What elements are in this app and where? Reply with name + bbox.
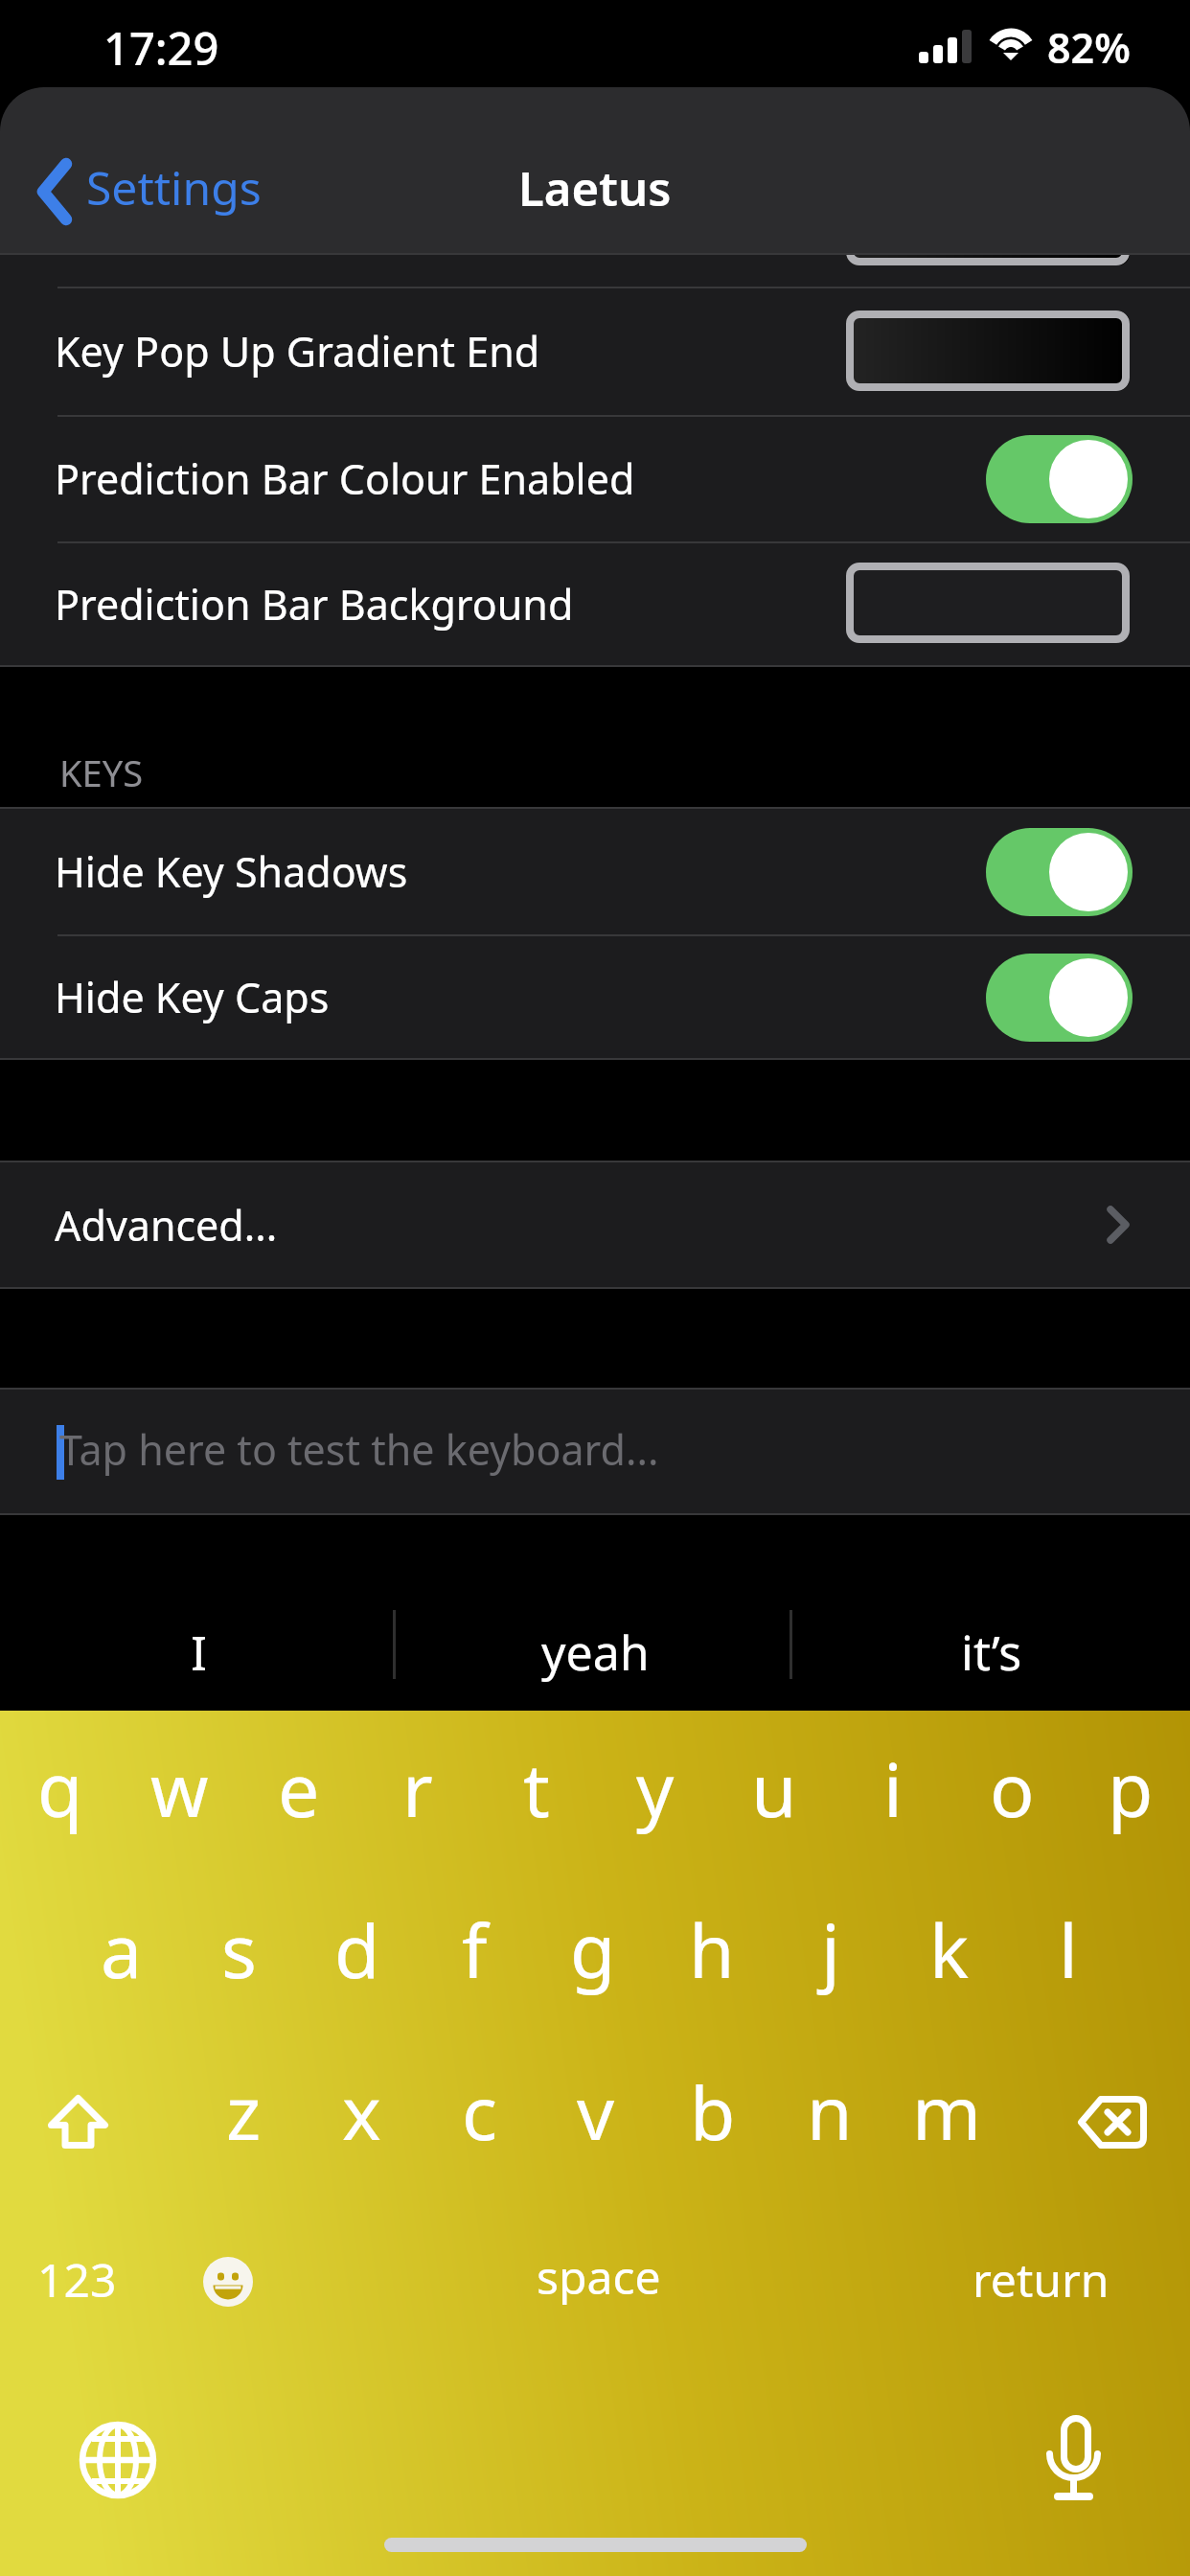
staticText: it’s	[961, 1620, 1022, 1685]
staticText: f	[462, 1899, 488, 2000]
staticText: o	[990, 1738, 1035, 1839]
staticText: a	[101, 1899, 143, 2000]
button[interactable]: g	[534, 1892, 652, 2007]
staticText: space	[537, 2245, 661, 2308]
button[interactable]: r	[358, 1731, 477, 1846]
staticText: k	[929, 1899, 970, 2000]
button[interactable]: b	[654, 2054, 771, 2169]
button[interactable]: x	[303, 2054, 421, 2169]
button[interactable]: 123	[0, 2219, 153, 2334]
button[interactable]: Colour swatch	[846, 563, 1130, 643]
button[interactable]: Advanced...	[0, 1162, 1190, 1287]
staticText: KEYS	[59, 747, 144, 797]
staticText: return	[973, 2248, 1110, 2311]
button[interactable]: k	[890, 1892, 1009, 2007]
button[interactable]: p	[1071, 1731, 1190, 1846]
staticText: 123	[37, 2248, 117, 2311]
staticText: yeah	[541, 1620, 650, 1685]
button[interactable]: yeah	[397, 1515, 793, 1711]
staticText: z	[226, 2061, 262, 2162]
button[interactable]: c	[421, 2054, 538, 2169]
button[interactable]: Toggle	[986, 828, 1133, 916]
staticText: g	[570, 1899, 616, 2000]
staticText: i	[883, 1738, 903, 1839]
staticText: b	[690, 2061, 736, 2162]
staticText: d	[334, 1899, 380, 2000]
staticText: m	[912, 2061, 981, 2162]
button[interactable]: space	[444, 2219, 754, 2334]
staticText: r	[402, 1738, 433, 1839]
staticText: n	[807, 2061, 853, 2162]
staticText: c	[462, 2061, 497, 2162]
staticText: 17:29	[103, 17, 219, 79]
staticText: Tap here to test the keyboard...	[59, 1421, 659, 1478]
button[interactable]: Prediction Bar Colour Enabled	[0, 415, 1190, 541]
button[interactable]: t	[477, 1731, 596, 1846]
staticText: Laetus	[518, 156, 672, 220]
button[interactable]: Toggle	[986, 435, 1133, 523]
button[interactable]: v	[538, 2054, 654, 2169]
button[interactable]: Advanced...	[0, 1162, 1190, 1287]
staticText: v	[577, 2061, 615, 2162]
staticText: Prediction Bar Colour Enabled	[55, 450, 635, 507]
button[interactable]: Key Pop Up Gradient End	[0, 287, 1190, 415]
button[interactable]: i	[834, 1731, 952, 1846]
staticText: 82%	[1047, 19, 1131, 76]
button[interactable]: n	[771, 2054, 888, 2169]
staticText: s	[221, 1899, 257, 2000]
button[interactable]: q	[0, 1731, 120, 1846]
button[interactable]: Dictation	[1018, 2400, 1133, 2515]
button[interactable]: Next keyboard	[60, 2403, 175, 2518]
staticText: t	[523, 1738, 550, 1839]
button[interactable]: Settings	[0, 148, 285, 230]
button[interactable]: j	[771, 1892, 890, 2007]
button[interactable]: return	[921, 2219, 1160, 2334]
staticText: Hide Key Shadows	[55, 843, 408, 900]
button[interactable]: Toggle	[986, 954, 1133, 1042]
staticText: x	[342, 2061, 381, 2162]
button[interactable]: l	[1009, 1892, 1128, 2007]
button[interactable]: f	[416, 1892, 534, 2007]
button[interactable]: it’s	[793, 1515, 1190, 1711]
button[interactable]: Hide Key Shadows	[0, 809, 1190, 934]
button[interactable]: h	[652, 1892, 771, 2007]
staticText: Settings	[86, 156, 262, 218]
button[interactable]: Prediction Bar Background	[0, 541, 1190, 667]
staticText: q	[37, 1738, 83, 1839]
staticText: Hide Key Caps	[55, 969, 330, 1025]
button[interactable]: o	[952, 1731, 1071, 1846]
staticText: l	[1059, 1899, 1078, 2000]
button[interactable]: m	[888, 2054, 1005, 2169]
staticText: p	[1108, 1738, 1154, 1839]
staticText: w	[150, 1738, 209, 1839]
button[interactable]: Backspace	[1035, 2064, 1190, 2179]
staticText: h	[689, 1899, 735, 2000]
staticText: u	[751, 1738, 797, 1839]
button[interactable]: y	[596, 1731, 715, 1846]
button[interactable]: Emoji	[171, 2224, 286, 2339]
staticText: y	[636, 1738, 675, 1839]
button[interactable]: d	[298, 1892, 416, 2007]
button[interactable]: Shift	[0, 2064, 155, 2179]
button[interactable]: w	[120, 1731, 240, 1846]
button[interactable]: a	[62, 1892, 180, 2007]
staticText: Advanced...	[55, 1197, 278, 1253]
button[interactable]: e	[240, 1731, 358, 1846]
staticText: Key Pop Up Gradient End	[55, 323, 540, 379]
button[interactable]: u	[715, 1731, 834, 1846]
staticText: j	[821, 1899, 840, 2000]
button[interactable]: s	[180, 1892, 298, 2007]
button[interactable]: Colour swatch	[846, 310, 1130, 391]
button[interactable]: Hide Key Caps	[0, 934, 1190, 1060]
button[interactable]: z	[185, 2054, 303, 2169]
staticText: I	[191, 1620, 207, 1685]
staticText: Prediction Bar Background	[55, 576, 574, 632]
button[interactable]: Tap here to test the keyboard...	[0, 1390, 1190, 1515]
button[interactable]: I	[0, 1515, 397, 1711]
staticText: e	[278, 1738, 320, 1839]
